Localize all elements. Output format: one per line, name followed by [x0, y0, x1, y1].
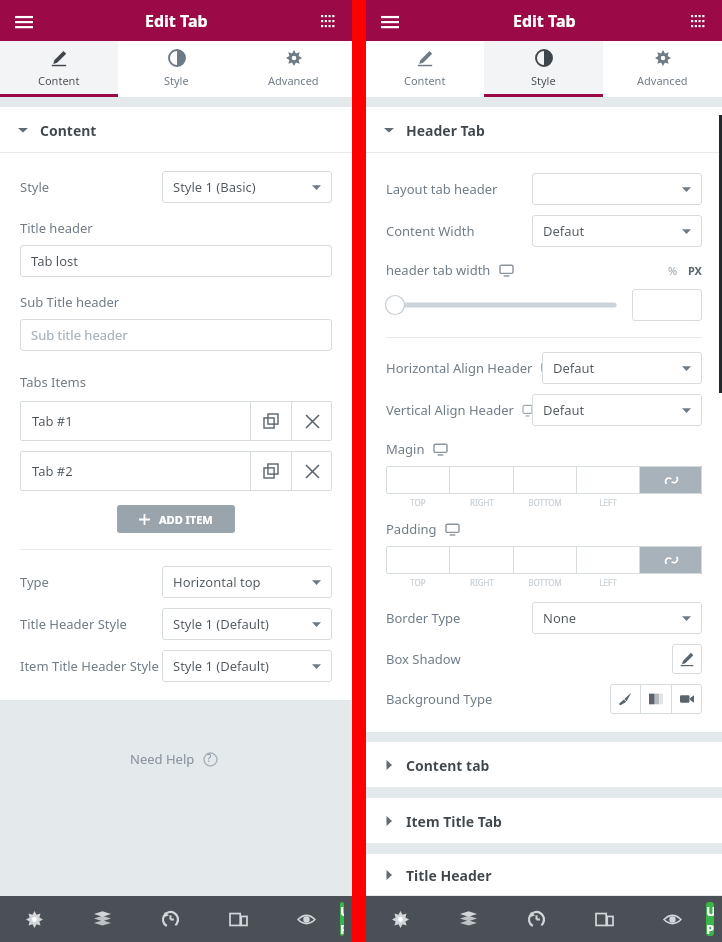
button[interactable]: None: [532, 602, 702, 634]
button[interactable]: PX: [688, 263, 702, 278]
button[interactable]: Settings: [0, 896, 68, 942]
staticText: Sub Title header: [20, 293, 120, 311]
button[interactable]: Preview: [638, 896, 706, 942]
button[interactable]: Content: [366, 41, 484, 97]
button[interactable]: Preview: [272, 896, 340, 942]
staticText: Tab #1: [32, 412, 73, 430]
button[interactable]: Style 1 (Default): [162, 650, 332, 682]
button[interactable]: Style 1 (Default): [162, 608, 332, 640]
staticText: Horizontal Align Header: [386, 359, 533, 377]
staticText: Advanced: [268, 73, 319, 88]
staticText: Vertical Align Header: [386, 401, 514, 419]
staticText: Title Header Style: [20, 615, 127, 633]
button[interactable]: Remove: [292, 451, 332, 491]
button[interactable]: Video background: [672, 684, 702, 714]
staticText: header tab width: [386, 261, 491, 279]
staticText: Style: [531, 73, 556, 88]
staticText: Content: [40, 121, 97, 140]
staticText: Sub title header: [31, 326, 128, 344]
staticText: Layout tab header: [386, 180, 498, 198]
button[interactable]: [450, 546, 513, 574]
staticText: BOTTOM: [528, 577, 562, 588]
button[interactable]: ADD ITEM: [117, 505, 235, 533]
staticText: UPDATE: [706, 902, 714, 936]
button[interactable]: Edit box shadow: [672, 644, 702, 674]
button[interactable]: Responsive mode: [570, 896, 638, 942]
button[interactable]: Link values together: [640, 466, 702, 494]
button[interactable]: Navigator: [68, 896, 136, 942]
button[interactable]: History: [136, 896, 204, 942]
button[interactable]: UPDATE: [340, 902, 344, 936]
staticText: Defaut: [553, 359, 595, 377]
button[interactable]: Menu: [8, 5, 40, 37]
button[interactable]: Gradient background: [641, 684, 671, 714]
staticText: RIGHT: [470, 497, 494, 508]
button[interactable]: Content tab: [366, 742, 722, 788]
staticText: LEFT: [599, 497, 617, 508]
button[interactable]: Duplicate: [251, 401, 291, 441]
staticText: %: [668, 263, 678, 278]
button[interactable]: Tab #2: [20, 451, 250, 491]
button[interactable]: [386, 466, 449, 494]
button[interactable]: Apps grid: [312, 5, 344, 37]
button[interactable]: [577, 546, 639, 574]
button[interactable]: [632, 289, 702, 321]
button[interactable]: Remove: [292, 401, 332, 441]
button[interactable]: [386, 546, 449, 574]
button[interactable]: Menu: [374, 5, 406, 37]
staticText: ?: [207, 751, 212, 765]
staticText: Box Shadow: [386, 650, 461, 668]
button[interactable]: Sub title header: [20, 319, 332, 351]
button[interactable]: Defaut: [532, 394, 702, 426]
button[interactable]: Item Title Tab: [366, 798, 722, 844]
button[interactable]: Defaut: [532, 215, 702, 247]
staticText: Defaut: [543, 401, 585, 419]
staticText: Defaut: [543, 222, 585, 240]
staticText: Style 1 (Default): [173, 615, 269, 633]
button[interactable]: [514, 546, 576, 574]
button[interactable]: Settings: [366, 896, 434, 942]
staticText: None: [543, 609, 577, 627]
staticText: Need Help: [130, 750, 195, 768]
staticText: Tab #2: [32, 462, 73, 480]
button[interactable]: History: [502, 896, 570, 942]
button[interactable]: Apps grid: [682, 5, 714, 37]
button[interactable]: Style: [118, 41, 235, 97]
button[interactable]: [450, 466, 513, 494]
button[interactable]: Style 1 (Basic): [162, 171, 332, 203]
button[interactable]: Duplicate: [251, 451, 291, 491]
button[interactable]: [532, 173, 702, 205]
button[interactable]: Title Header: [366, 854, 722, 896]
button[interactable]: [514, 466, 576, 494]
button[interactable]: Tab #1: [20, 401, 250, 441]
button[interactable]: Defaut: [542, 352, 702, 384]
staticText: Type: [20, 573, 49, 591]
staticText: Item Title Header Style: [20, 657, 159, 675]
button[interactable]: Navigator: [434, 896, 502, 942]
staticText: Title Header: [406, 866, 492, 885]
button[interactable]: Need Help: [124, 744, 229, 774]
button[interactable]: Tab lost: [20, 245, 332, 277]
staticText: Style 1 (Default): [173, 657, 269, 675]
button[interactable]: Content: [0, 41, 118, 97]
button[interactable]: Advanced: [235, 41, 352, 97]
button[interactable]: Header Tab: [366, 107, 722, 153]
button[interactable]: [386, 292, 618, 318]
button[interactable]: Responsive mode: [204, 896, 272, 942]
button[interactable]: UPDATE: [706, 902, 714, 936]
staticText: Tab lost: [31, 252, 78, 270]
button[interactable]: Advanced: [603, 41, 722, 97]
staticText: RIGHT: [470, 577, 494, 588]
button[interactable]: Style: [484, 41, 603, 97]
staticText: Style: [164, 73, 189, 88]
staticText: Edit Tab: [513, 10, 576, 32]
button[interactable]: Content: [0, 107, 352, 153]
staticText: LEFT: [599, 577, 617, 588]
button[interactable]: Classic background: [610, 684, 640, 714]
staticText: Content: [38, 73, 80, 88]
button[interactable]: [577, 466, 639, 494]
staticText: Horizontal top: [173, 573, 261, 591]
staticText: TOP: [410, 577, 426, 588]
button[interactable]: Link values together: [640, 546, 702, 574]
button[interactable]: Horizontal top: [162, 566, 332, 598]
